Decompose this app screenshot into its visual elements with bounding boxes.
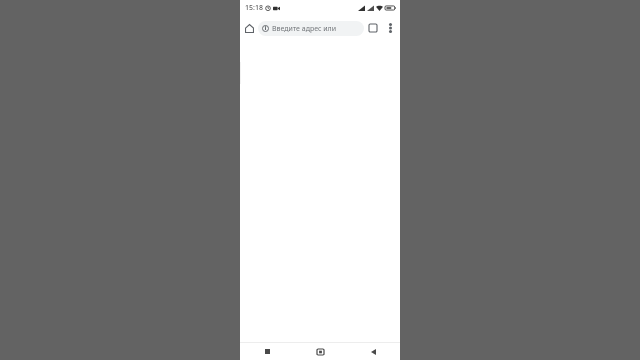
staticText: Введите адрес или поисковой запрос bbox=[272, 24, 358, 34]
button[interactable]: Введите адрес или поисковой запрос bbox=[258, 21, 364, 36]
button[interactable]: Home bbox=[294, 343, 347, 360]
button[interactable]: More options bbox=[382, 20, 398, 36]
button[interactable]: Recent apps bbox=[240, 343, 294, 360]
button[interactable]: Switch tabs bbox=[364, 19, 382, 37]
button[interactable]: Home bbox=[240, 19, 258, 37]
button[interactable]: Back bbox=[347, 343, 400, 360]
staticText: 15:18 bbox=[245, 3, 263, 13]
